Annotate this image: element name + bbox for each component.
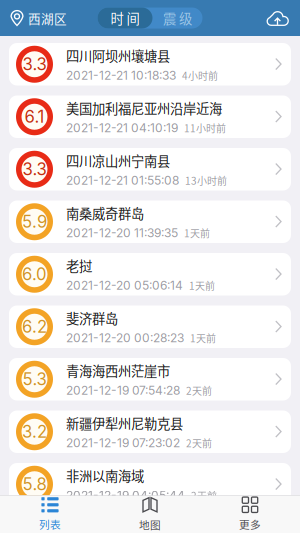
staticText: 2天前 xyxy=(186,436,212,450)
staticText: 3.2 xyxy=(22,422,47,442)
button[interactable]: 5.9 xyxy=(9,200,291,243)
staticText: 2021-12-19 04:05:44 xyxy=(66,488,185,503)
button[interactable]: 3.3 xyxy=(9,148,291,190)
staticText: 2021-12-21 04:10:19 xyxy=(66,121,178,135)
staticText: 4小时前 xyxy=(182,68,218,83)
staticText: 时 间 xyxy=(110,8,139,28)
staticText: 2021-12-21 01:55:08 xyxy=(66,173,179,188)
staticText: 2天前 xyxy=(191,488,217,503)
button[interactable]: 5.8 xyxy=(9,463,291,505)
staticText: 非洲以南海域 xyxy=(66,466,144,485)
staticText: 2021-12-20 05:06:14 xyxy=(66,278,183,293)
staticText: 6.1 xyxy=(24,107,44,127)
button[interactable]: 西湖区 xyxy=(0,0,73,36)
button[interactable]: 时 间 xyxy=(97,7,152,28)
button[interactable]: 3.3 xyxy=(9,43,291,85)
staticText: 地图 xyxy=(139,517,161,532)
staticText: 5.9 xyxy=(22,212,47,232)
staticText: 四川阿坝州壤塘县 xyxy=(66,46,170,65)
button[interactable]: 6.0 xyxy=(9,253,291,295)
staticText: 斐济群岛 xyxy=(66,308,118,328)
button[interactable]: 列表 xyxy=(0,496,100,533)
staticText: 3.3 xyxy=(22,159,46,179)
staticText: 6.0 xyxy=(22,264,47,284)
staticText: 2021-12-20 00:28:23 xyxy=(66,331,184,345)
staticText: 2天前 xyxy=(186,383,212,398)
button[interactable]: Upload xyxy=(266,0,300,36)
staticText: 5.8 xyxy=(22,474,46,494)
staticText: 2021-12-20 11:39:35 xyxy=(66,226,178,240)
staticText: 1天前 xyxy=(190,331,216,345)
staticText: 5.3 xyxy=(22,369,46,389)
staticText: 3.3 xyxy=(22,54,46,74)
button[interactable]: 3.2 xyxy=(9,410,291,453)
staticText: 13小时前 xyxy=(185,173,227,188)
button[interactable]: 地图 xyxy=(100,496,200,533)
staticText: 2021-12-19 07:54:28 xyxy=(66,383,180,398)
staticText: 1天前 xyxy=(189,278,215,293)
staticText: 美国加利福尼亚州沿岸近海 xyxy=(66,98,222,118)
button[interactable]: 震 级 xyxy=(152,7,202,28)
staticText: 更多 xyxy=(239,516,261,532)
staticText: 11小时前 xyxy=(184,121,226,135)
button[interactable]: 6.1 xyxy=(9,95,291,138)
staticText: 震 级 xyxy=(163,8,192,28)
button[interactable]: 5.3 xyxy=(9,358,291,400)
button[interactable]: 6.2 xyxy=(9,305,291,348)
staticText: 2021-12-19 07:23:02 xyxy=(66,436,180,450)
button[interactable]: 更多 xyxy=(200,496,300,533)
staticText: 6.2 xyxy=(22,317,47,337)
staticText: 列表 xyxy=(39,516,61,532)
staticText: 西湖区 xyxy=(28,9,67,27)
staticText: 2021-12-21 10:18:33 xyxy=(66,68,176,83)
staticText: 青海海西州茫崖市 xyxy=(66,361,170,380)
staticText: 南桑威奇群岛 xyxy=(66,203,144,223)
staticText: 老挝 xyxy=(66,256,92,275)
staticText: 新疆伊犁州尼勒克县 xyxy=(66,413,183,433)
staticText: 四川凉山州宁南县 xyxy=(66,151,170,170)
staticText: 1天前 xyxy=(184,226,210,240)
